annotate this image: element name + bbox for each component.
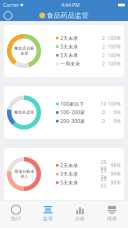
staticText: 餐饮店台账 未录 (14, 46, 34, 56)
staticText: 2065 (100, 176, 106, 189)
staticText: 0% (113, 109, 120, 116)
staticText: 100% (107, 61, 120, 67)
staticText: 100% (107, 101, 120, 107)
staticText: 100-200家 (60, 109, 85, 116)
staticText: 菜场台账未 录入 (14, 169, 34, 179)
button[interactable]: 分析 (64, 201, 96, 228)
button[interactable]: 监管 (32, 201, 64, 228)
staticText: 19 (100, 101, 106, 107)
staticText: 100% (107, 52, 120, 58)
staticText: 2 (102, 35, 105, 41)
staticText: 3天未录 (60, 171, 78, 177)
staticText: Carrier (3, 1, 19, 8)
staticText: 98% (110, 179, 120, 186)
staticText: 2 (102, 43, 105, 50)
staticText: 2天未录 (60, 162, 78, 169)
staticText: 98% (110, 162, 120, 169)
staticText: 4:44 PM (61, 1, 80, 8)
staticText: 3天未录 (60, 43, 78, 50)
staticText: 0 (102, 109, 105, 116)
button[interactable]: 报表 (96, 201, 128, 228)
staticText: 2080 (100, 159, 106, 172)
staticText: 200-300家 (60, 118, 85, 124)
staticText: 报表 (107, 216, 117, 222)
staticText: 2天未录 (60, 35, 78, 41)
staticText: 2 (102, 61, 105, 67)
button[interactable]: 统计 (0, 201, 32, 228)
staticText: 0 (102, 118, 105, 124)
staticText: 2374 (100, 167, 106, 181)
staticText: 一周未录 (60, 61, 80, 67)
staticText: 分析 (75, 216, 85, 222)
staticText: 5天未录 (60, 179, 78, 186)
staticText: 100% (107, 43, 120, 50)
staticText: 餐饮外卖率 (14, 110, 34, 115)
staticText: 100家以下 (60, 101, 84, 107)
staticText: 监管 (43, 216, 53, 222)
staticText: 99% (110, 171, 120, 177)
staticText: 食品药品监管 (47, 11, 89, 20)
button[interactable]: Profile (4, 11, 12, 19)
staticText: 5天未录 (60, 52, 78, 58)
staticText: 统计 (11, 216, 21, 222)
staticText: 100% (107, 35, 120, 41)
staticText: 2 (102, 52, 105, 58)
staticText: 0% (113, 118, 120, 124)
